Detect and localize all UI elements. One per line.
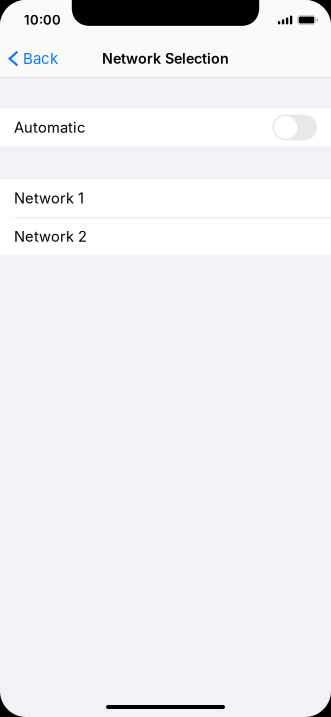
button[interactable]: Automatic <box>0 109 331 146</box>
button[interactable]: Network 2 <box>0 218 331 255</box>
staticText: Network Selection <box>102 50 229 67</box>
staticText: 10:00 <box>24 12 61 28</box>
staticText: Network 2 <box>14 227 87 245</box>
button[interactable]: Back <box>0 41 68 77</box>
staticText: Back <box>23 49 58 68</box>
staticText: Network 1 <box>14 189 84 207</box>
staticText: Automatic <box>14 119 85 136</box>
button[interactable]: Network 1 <box>0 179 331 217</box>
